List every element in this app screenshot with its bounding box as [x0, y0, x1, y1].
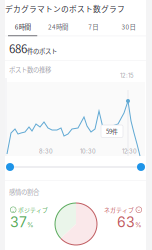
- staticText: 8:30: [39, 148, 53, 155]
- staticText: 12:30: [122, 148, 137, 155]
- staticText: ネガティブ: [104, 205, 134, 214]
- staticText: 10:30: [80, 148, 96, 155]
- staticText: 7日: [88, 22, 98, 31]
- staticText: 63%: [117, 214, 142, 230]
- staticText: 37%: [10, 214, 34, 230]
- staticText: ポスト数の推移: [9, 65, 51, 74]
- staticText: 12:15: [120, 72, 134, 79]
- button[interactable]: 30日: [111, 18, 146, 36]
- button[interactable]: 24時間: [40, 18, 75, 36]
- staticText: デカグラマトンのポスト数グラフ: [5, 3, 125, 14]
- staticText: 感情の割合: [9, 187, 39, 196]
- staticText: 59件: [106, 127, 118, 135]
- staticText: 6時間: [15, 22, 31, 31]
- staticText: 686件のポスト: [9, 40, 57, 56]
- staticText: ポジティブ: [18, 205, 48, 214]
- button[interactable]: 6時間: [5, 18, 40, 36]
- button[interactable]: 7日: [75, 18, 111, 36]
- staticText: 30日: [121, 22, 135, 31]
- staticText: 24時間: [48, 22, 68, 31]
